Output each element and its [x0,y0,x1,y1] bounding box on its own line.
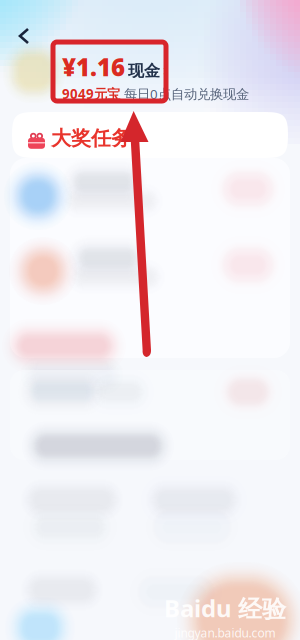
staticText: 9049元宝 [62,85,120,103]
staticText: ¥1.16 [62,51,125,83]
button[interactable]: Back [6,18,42,54]
button[interactable]: ¥1.16 [62,51,249,103]
staticText: 现金 [128,61,160,81]
staticText: 每日0点自动兑换现金 [124,85,249,103]
staticText: › [163,59,168,80]
staticText: jingyan.baidu.com [174,625,275,640]
staticText: 大奖任务 [51,126,131,151]
staticText: Baidu 经验 [164,592,286,624]
